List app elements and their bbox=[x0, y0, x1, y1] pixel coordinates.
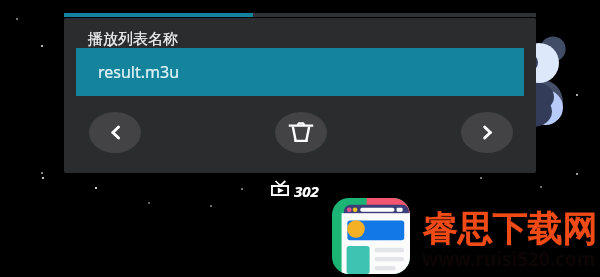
staticText: 播放列表名称 bbox=[88, 30, 178, 49]
staticText: 302 bbox=[294, 181, 319, 201]
staticText: result.m3u bbox=[98, 61, 180, 83]
staticText: 睿思下载网 bbox=[422, 207, 597, 251]
button[interactable]: Previous bbox=[89, 112, 141, 153]
button[interactable]: Next bbox=[461, 112, 513, 153]
button[interactable]: Delete bbox=[275, 112, 327, 153]
staticText: www.ruisi520.com bbox=[422, 246, 596, 272]
